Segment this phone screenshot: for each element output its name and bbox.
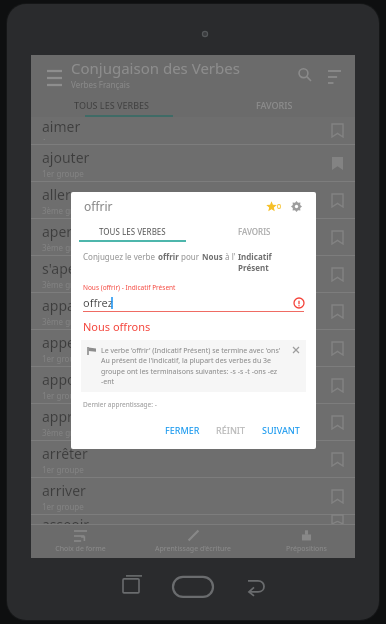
staticText: Nous [202, 251, 223, 262]
staticText: SUIVANT [262, 424, 300, 436]
staticText: offrir [158, 251, 179, 262]
staticText: asseoir [42, 515, 90, 524]
staticText: aller [42, 185, 71, 204]
button[interactable]: Aprentissage d'écriture [129, 524, 257, 558]
staticText: FAVORIS [238, 226, 271, 237]
staticText: TOUS LES VERBES [74, 99, 150, 111]
staticText: Nous offrons [83, 319, 151, 334]
staticText: offrez [83, 295, 113, 310]
staticText: pour [179, 251, 202, 262]
button[interactable]: SUIVANT [254, 419, 308, 441]
button[interactable]: aimer [31, 117, 355, 145]
staticText: s'apercevoir [42, 259, 121, 278]
button[interactable]: asseoir [31, 515, 355, 524]
staticText: 1er groupe [42, 353, 84, 364]
staticText: 3ème groupe [42, 316, 93, 327]
staticText: 3ème groupe [42, 427, 93, 438]
button[interactable]: RÉINIT [208, 419, 254, 441]
staticText: FERMER [165, 424, 200, 436]
button[interactable]: Search [291, 61, 317, 87]
staticText: 0 [277, 202, 282, 212]
button[interactable]: Choix de forme [31, 524, 129, 558]
staticText: à l' [223, 251, 238, 262]
button[interactable]: FAVORIS [193, 92, 355, 117]
staticText: arrêter [42, 444, 88, 463]
staticText: apercevoir [42, 222, 112, 241]
staticText: FAVORIS [256, 99, 293, 111]
button[interactable]: Prépositions [257, 524, 355, 558]
button[interactable]: apporter [31, 367, 355, 404]
button[interactable]: Sort [321, 61, 347, 87]
staticText: 1er groupe [42, 168, 84, 179]
button[interactable]: aller [31, 182, 355, 219]
staticText: Indicatif Présent [238, 251, 304, 273]
staticText: Verbes Français [71, 79, 130, 90]
staticText: Le verbe 'offrir' (Indicatif Présent) se… [101, 346, 281, 356]
staticText: apprendre [42, 407, 112, 426]
staticText: 1er groupe [42, 501, 84, 512]
button[interactable]: TOUS LES VERBES [31, 92, 193, 117]
button[interactable]: offrez [71, 294, 316, 311]
button[interactable]: apparaître [31, 293, 355, 330]
staticText: offrir [84, 198, 113, 214]
button[interactable]: appeler [31, 330, 355, 367]
staticText: Conjugaison des Verbes [71, 58, 240, 78]
staticText: Prépositions [286, 544, 327, 554]
staticText: 3ème groupe [42, 205, 93, 216]
staticText: TOUS LES VERBES [99, 226, 166, 237]
staticText: Dernier apprentissage: - [83, 400, 157, 409]
staticText: Nous (offrir) - Indicatif Présent [83, 283, 176, 292]
staticText: Conjuguez le verbe [83, 251, 158, 262]
button[interactable]: arrêter [31, 441, 355, 478]
button[interactable]: Favoris [266, 201, 282, 212]
button[interactable]: apercevoir [31, 219, 355, 256]
staticText: ajouter [42, 148, 90, 167]
button[interactable]: s'apercevoir [31, 256, 355, 293]
staticText: aimer [42, 117, 81, 136]
staticText: 1er groupe [42, 390, 84, 401]
staticText: 1er groupe [42, 464, 84, 475]
staticText: Choix de forme [55, 544, 106, 554]
button[interactable]: FERMER [157, 419, 208, 441]
staticText: Aprentissage d'écriture [155, 544, 231, 554]
staticText: Au présent de l'indicatif, la plupart de… [101, 356, 290, 386]
button[interactable]: TOUS LES VERBES [71, 220, 193, 242]
staticText: arriver [42, 481, 86, 500]
button[interactable]: ajouter [31, 145, 355, 182]
staticText: 3ème groupe [42, 242, 93, 253]
staticText: RÉINIT [216, 424, 246, 436]
button[interactable]: Menu [41, 61, 67, 87]
staticText: appeler [42, 333, 93, 352]
button[interactable]: apprendre [31, 404, 355, 441]
button[interactable]: arriver [31, 478, 355, 515]
staticText: apparaître [42, 296, 111, 315]
staticText: 3ème groupe [42, 279, 93, 290]
staticText: apporter [42, 370, 101, 389]
button[interactable]: Paramètres [289, 199, 303, 213]
button[interactable]: Fermer l'astuce [290, 344, 302, 356]
button[interactable]: FAVORIS [193, 220, 316, 242]
